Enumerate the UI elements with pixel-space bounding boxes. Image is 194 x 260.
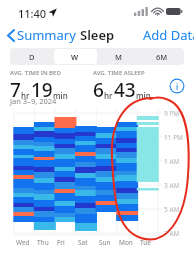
staticText: 1 AM xyxy=(164,157,180,166)
button[interactable]: 6M xyxy=(140,48,184,65)
staticText: Jan 3–9, 2024 xyxy=(10,96,57,106)
staticText: hr xyxy=(104,90,113,101)
staticText: 11:40 xyxy=(18,6,47,21)
staticText: Sleep xyxy=(80,26,115,44)
staticText: M xyxy=(115,52,122,62)
button[interactable]: M xyxy=(96,48,140,65)
button[interactable]: Summary xyxy=(7,26,76,44)
staticText: Sun xyxy=(99,238,111,247)
staticText: Fri xyxy=(57,238,65,247)
staticText: 6 xyxy=(93,77,104,103)
staticText: Add Data xyxy=(143,26,194,44)
staticText: 3 AM xyxy=(164,181,180,190)
button[interactable]: Add Data xyxy=(143,26,194,44)
staticText: 9 PM xyxy=(164,109,180,118)
staticText: 19 xyxy=(31,77,53,103)
staticText: 7 AM xyxy=(164,229,180,238)
staticText: Sat xyxy=(78,238,88,247)
staticText: min xyxy=(136,90,151,101)
button[interactable]: W xyxy=(53,48,96,65)
staticText: i xyxy=(176,81,179,92)
staticText: min xyxy=(53,90,68,101)
staticText: Tue xyxy=(140,238,151,247)
staticText: AVG. TIME IN BED xyxy=(10,69,61,77)
staticText: Thu xyxy=(37,238,49,247)
staticText: 43 xyxy=(114,77,136,103)
staticText: Wed xyxy=(16,238,30,247)
staticText: W xyxy=(71,52,79,62)
staticText: hr xyxy=(21,90,30,101)
button[interactable]: D xyxy=(10,48,53,65)
staticText: Mon xyxy=(119,238,133,247)
button[interactable]: About sleep data xyxy=(169,78,185,94)
staticText: 7 xyxy=(10,77,21,103)
staticText: 6M xyxy=(156,52,168,62)
staticText: AVG. TIME ASLEEP xyxy=(93,69,145,77)
staticText: D xyxy=(29,52,35,62)
staticText: Summary xyxy=(17,26,76,44)
staticText: 5 AM xyxy=(164,205,180,214)
staticText: 11 PM xyxy=(164,133,183,142)
